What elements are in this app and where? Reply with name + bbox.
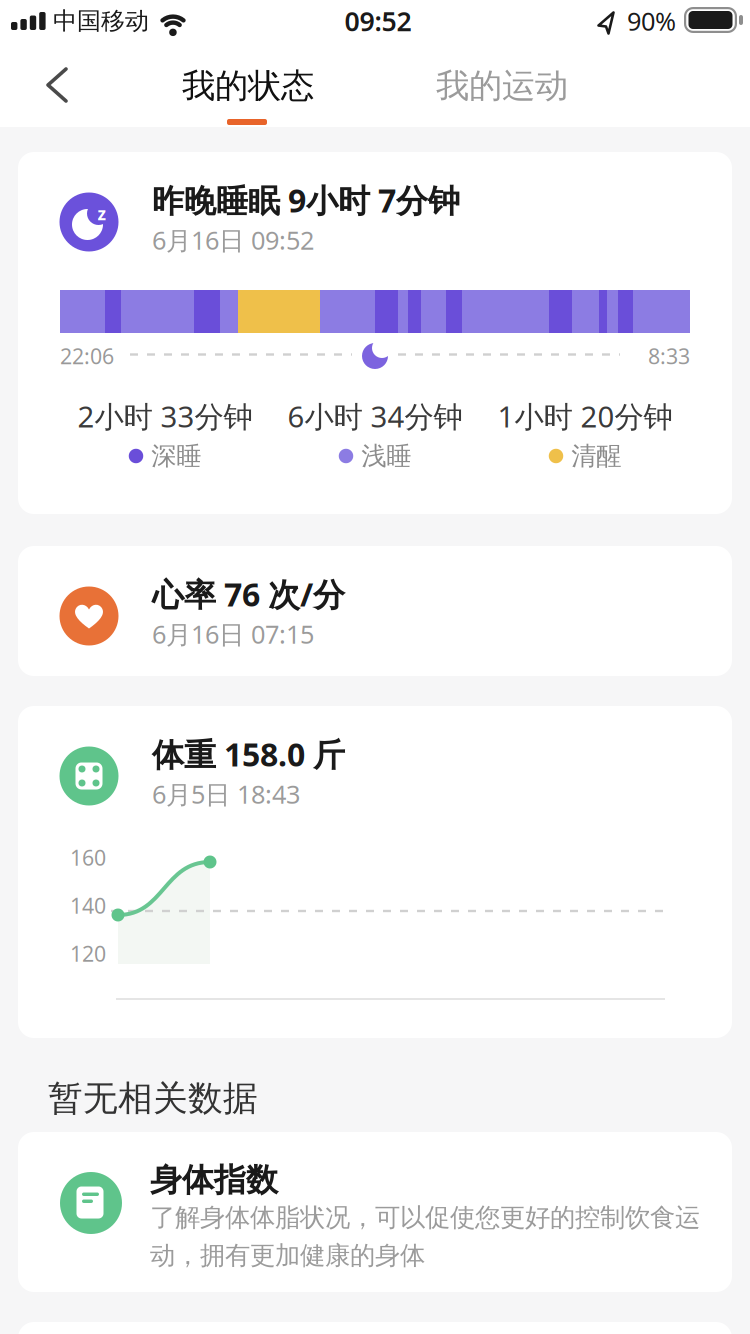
staticText: z: [97, 202, 106, 225]
staticText: 2小时 33分钟: [77, 396, 252, 435]
staticText: 身体指数: [150, 1160, 278, 1200]
staticText: 120: [70, 939, 106, 968]
staticText: 深睡: [151, 440, 201, 471]
staticText: 我的运动: [436, 65, 568, 106]
staticText: 22:06: [60, 342, 114, 370]
staticText: 6小时 34分钟: [287, 396, 462, 435]
staticText: 了解身体体脂状况，可以促使您更好的控制饮食运动，拥有更加健康的身体: [150, 1202, 700, 1271]
staticText: 昨晚睡眠 9小时 7分钟: [152, 179, 460, 221]
button[interactable]: 我的状态: [128, 64, 368, 108]
staticText: 浅睡: [361, 440, 411, 471]
staticText: 160: [70, 843, 106, 872]
staticText: 我的状态: [182, 65, 314, 106]
staticText: 1小时 20分钟: [497, 396, 672, 435]
staticText: 09:52: [344, 3, 411, 39]
staticText: 暂无相关数据: [48, 1077, 258, 1120]
staticText: 90%: [627, 4, 676, 38]
staticText: 中国移动: [53, 6, 149, 36]
staticText: 心率 76 次/分: [152, 573, 345, 615]
staticText: 8:33: [648, 342, 690, 370]
button[interactable]: Back: [0, 53, 90, 117]
staticText: 清醒: [571, 440, 621, 471]
staticText: 6月16日 07:15: [152, 617, 314, 651]
button[interactable]: 心率 76 次/分: [18, 546, 732, 676]
button[interactable]: 身体指数: [18, 1132, 732, 1292]
staticText: 6月5日 18:43: [152, 777, 300, 811]
button[interactable]: 体重 158.0 斤: [18, 706, 732, 1038]
staticText: 6月16日 09:52: [152, 223, 314, 257]
button[interactable]: 我的运动: [382, 64, 622, 108]
staticText: 体重 158.0 斤: [152, 733, 345, 775]
staticText: 140: [70, 891, 106, 920]
button[interactable]: z: [18, 152, 732, 514]
